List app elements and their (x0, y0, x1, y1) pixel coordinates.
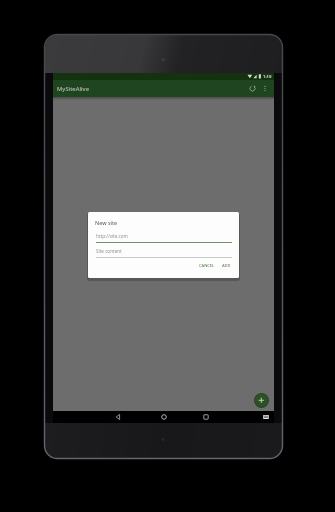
button[interactable] (263, 414, 269, 420)
staticText: New site (95, 219, 118, 226)
staticText: Site content (96, 248, 122, 254)
button[interactable] (161, 414, 167, 420)
button[interactable] (254, 393, 269, 408)
staticText: 1:10 (263, 74, 272, 80)
button[interactable] (203, 414, 209, 420)
staticText: MySiteAlive (57, 85, 89, 93)
button[interactable]: ADD (220, 260, 236, 272)
staticText: http://site.com (96, 233, 128, 239)
staticText: ADD (222, 263, 231, 268)
button[interactable]: CANCEL (197, 260, 221, 272)
button[interactable] (249, 85, 256, 92)
button[interactable] (115, 414, 121, 420)
button[interactable]: MySiteAlive (53, 80, 274, 98)
staticText: CANCEL (199, 263, 215, 268)
button[interactable] (262, 85, 268, 92)
